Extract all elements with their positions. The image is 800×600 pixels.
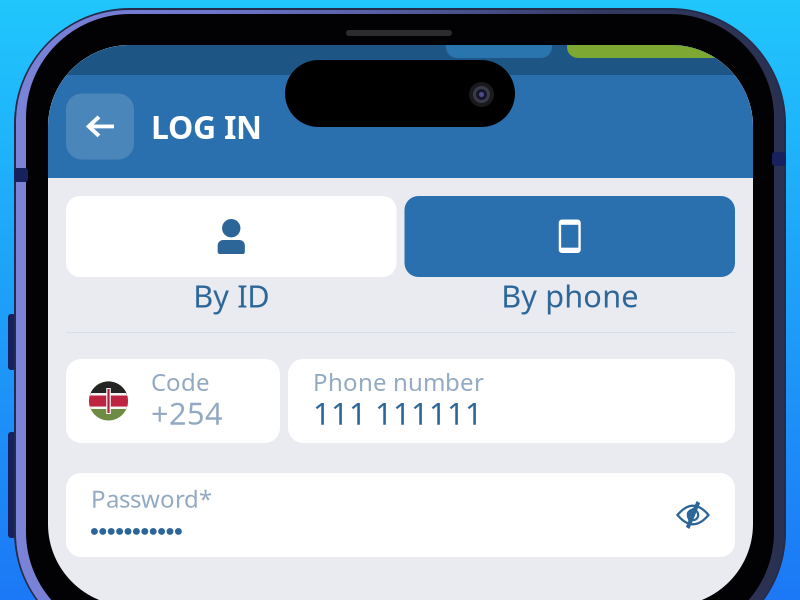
button[interactable]: By phone xyxy=(404,196,735,314)
staticText: Phone number xyxy=(313,366,484,397)
staticText: +254 xyxy=(151,392,223,433)
button[interactable]: By ID xyxy=(66,196,396,314)
staticText: Code xyxy=(151,366,210,397)
staticText: Password* xyxy=(91,483,212,514)
staticText: 111 111111 xyxy=(313,392,483,433)
button[interactable]: Show password xyxy=(667,489,719,541)
staticText: LOG IN xyxy=(151,105,262,148)
staticText: By ID xyxy=(193,275,269,316)
staticText: By phone xyxy=(501,275,638,316)
button[interactable]: Back xyxy=(66,93,134,159)
